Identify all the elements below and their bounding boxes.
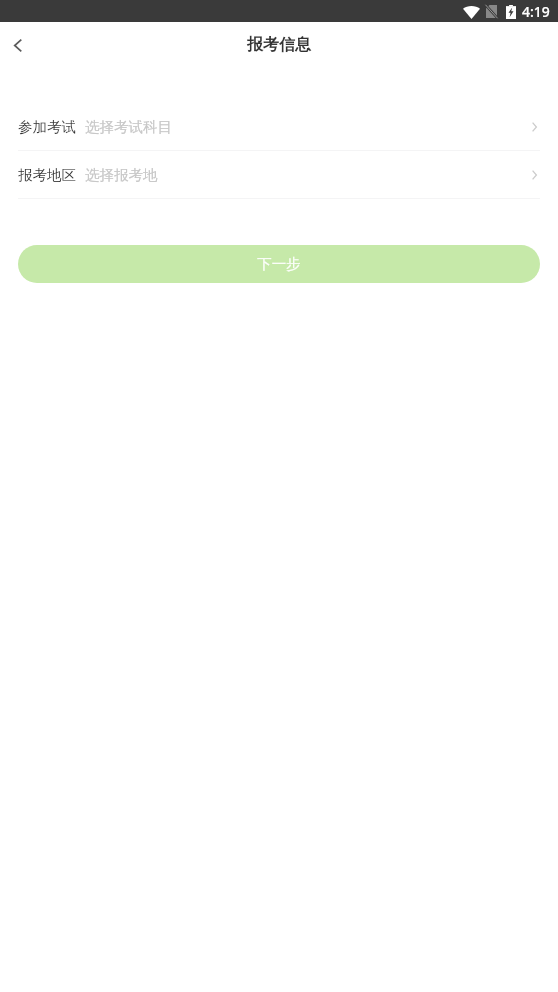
button[interactable]: 参加考试 (0, 103, 558, 150)
staticText: 选择报考地 (85, 166, 158, 184)
button[interactable]: 报考地区 (0, 151, 558, 198)
staticText: 报考信息 (247, 35, 311, 55)
button[interactable]: 下一步 (18, 245, 540, 283)
staticText: 报考地区 (18, 166, 76, 184)
button[interactable]: Back (0, 22, 40, 68)
staticText: 参加考试 (18, 118, 76, 136)
staticText: 下一步 (257, 255, 301, 273)
staticText: 选择考试科目 (85, 118, 172, 136)
staticText: 4:19 (522, 2, 550, 21)
